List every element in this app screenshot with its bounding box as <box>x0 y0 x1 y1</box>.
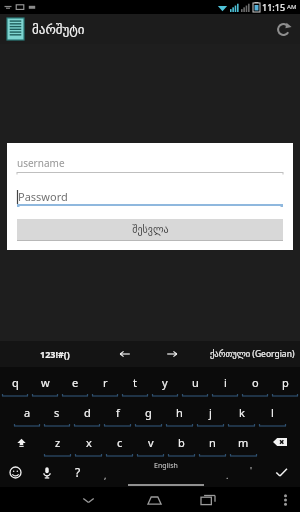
button[interactable]: Home <box>138 487 170 512</box>
button[interactable]: ? <box>62 457 93 487</box>
button[interactable]: f <box>102 397 133 427</box>
button[interactable]: y <box>150 367 180 397</box>
staticText: o <box>252 375 259 390</box>
staticText: v <box>148 435 154 450</box>
button[interactable]: g <box>133 397 164 427</box>
staticText: u <box>192 375 199 390</box>
staticText: w <box>41 375 50 390</box>
staticText: s <box>54 405 60 420</box>
button[interactable]: . <box>215 457 239 487</box>
staticText: g <box>145 405 152 420</box>
button[interactable]: c <box>104 427 135 457</box>
button[interactable]: z <box>42 427 73 457</box>
button[interactable]: p <box>270 367 300 397</box>
staticText: m <box>238 435 249 450</box>
button[interactable]: Space <box>117 457 215 487</box>
button[interactable]: More options <box>276 487 294 512</box>
button[interactable]: j <box>195 397 226 427</box>
staticText: p <box>282 375 289 390</box>
staticText: l <box>271 405 274 420</box>
staticText: r <box>103 375 108 390</box>
staticText: AM <box>287 3 297 11</box>
staticText: q <box>12 375 19 390</box>
button[interactable]: q <box>0 367 30 397</box>
button[interactable]: Done <box>263 457 300 487</box>
button[interactable]: Password <box>17 185 283 207</box>
button[interactable]: x <box>73 427 104 457</box>
staticText: , <box>104 469 107 481</box>
button[interactable]: Next <box>161 343 183 365</box>
button[interactable]: l <box>257 397 288 427</box>
staticText: j <box>209 405 212 420</box>
staticText: h <box>176 405 183 420</box>
button[interactable]: ' <box>239 457 263 487</box>
button[interactable]: r <box>90 367 120 397</box>
staticText: a <box>24 405 31 420</box>
button[interactable]: b <box>166 427 197 457</box>
staticText: c <box>117 435 123 450</box>
button[interactable]: a <box>12 397 42 427</box>
staticText: z <box>55 435 61 450</box>
button[interactable]: Previous <box>114 343 136 365</box>
staticText: d <box>84 405 91 420</box>
staticText: Password <box>18 189 68 204</box>
button[interactable]: Voice input <box>31 457 62 487</box>
button[interactable]: i <box>210 367 240 397</box>
button[interactable]: Recent apps <box>192 487 224 512</box>
staticText: n <box>209 435 216 450</box>
button[interactable]: Emoji <box>0 457 31 487</box>
staticText: k <box>239 405 245 420</box>
button[interactable]: u <box>180 367 210 397</box>
button[interactable]: შესვლა <box>17 219 283 240</box>
button[interactable]: o <box>240 367 270 397</box>
button[interactable]: v <box>135 427 166 457</box>
staticText: x <box>86 435 92 450</box>
staticText: მარშუტი <box>32 22 85 37</box>
button[interactable]: k <box>226 397 257 427</box>
staticText: i <box>224 375 227 390</box>
button[interactable]: h <box>164 397 195 427</box>
button[interactable]: n <box>197 427 228 457</box>
staticText: ? <box>75 464 81 480</box>
staticText: y <box>162 375 168 390</box>
staticText: ' <box>250 464 253 476</box>
staticText: f <box>116 405 120 420</box>
staticText: 11:15 <box>262 1 286 13</box>
staticText: . <box>226 469 229 481</box>
button[interactable]: Hide keyboard <box>72 487 104 512</box>
button[interactable]: Backspace <box>259 427 300 457</box>
staticText: t <box>133 375 137 390</box>
button[interactable]: Refresh <box>270 16 296 42</box>
button[interactable]: Shift <box>0 427 42 457</box>
button[interactable]: d <box>72 397 102 427</box>
button[interactable]: t <box>120 367 150 397</box>
staticText: შესვლა <box>132 224 169 236</box>
button[interactable]: 123!#() <box>40 348 70 360</box>
button[interactable]: username <box>17 152 283 174</box>
staticText: English <box>154 461 178 471</box>
staticText: e <box>72 375 79 390</box>
button[interactable]: m <box>228 427 259 457</box>
staticText: username <box>17 156 65 170</box>
button[interactable]: s <box>42 397 72 427</box>
button[interactable]: , <box>93 457 117 487</box>
button[interactable]: e <box>60 367 90 397</box>
button[interactable]: ქართული (Georgian) <box>210 348 295 360</box>
staticText: b <box>178 435 185 450</box>
button[interactable]: w <box>30 367 60 397</box>
